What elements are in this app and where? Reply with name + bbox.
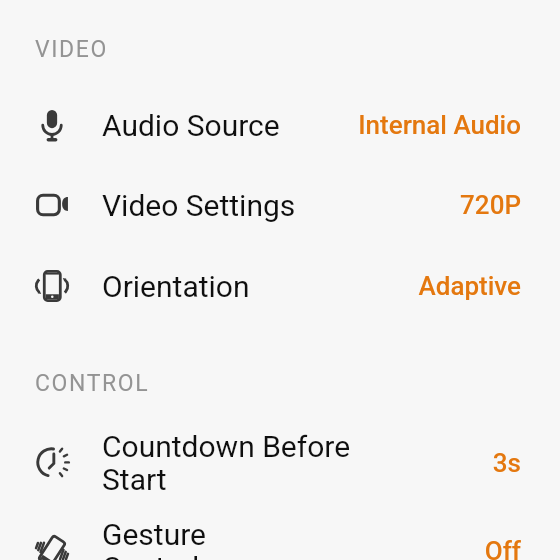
other: Orientation — [34, 269, 70, 303]
staticText: Video Settings — [102, 188, 296, 223]
staticText: Audio Source — [102, 108, 280, 143]
button[interactable]: Countdown before start — [0, 423, 560, 503]
staticText: Off — [484, 536, 521, 560]
button[interactable]: Gesture control — [0, 511, 560, 560]
staticText: VIDEO — [35, 36, 108, 63]
button[interactable]: Orientation — [0, 246, 560, 326]
other: Video settings — [34, 188, 70, 222]
staticText: CONTROL — [35, 370, 150, 397]
staticText: Adaptive — [418, 271, 521, 301]
staticText: Orientation — [102, 269, 250, 304]
button[interactable]: Video settings — [0, 165, 560, 245]
staticText: Gesture Control — [102, 517, 206, 560]
other: Gesture control — [34, 534, 70, 560]
button[interactable]: Audio source — [0, 85, 560, 165]
other: Audio source — [34, 108, 70, 142]
staticText: Countdown Before Start — [102, 429, 352, 497]
other: Countdown before start — [34, 446, 70, 480]
staticText: Internal Audio — [358, 110, 521, 140]
staticText: 3s — [492, 448, 521, 478]
staticText: 720P — [460, 190, 521, 220]
